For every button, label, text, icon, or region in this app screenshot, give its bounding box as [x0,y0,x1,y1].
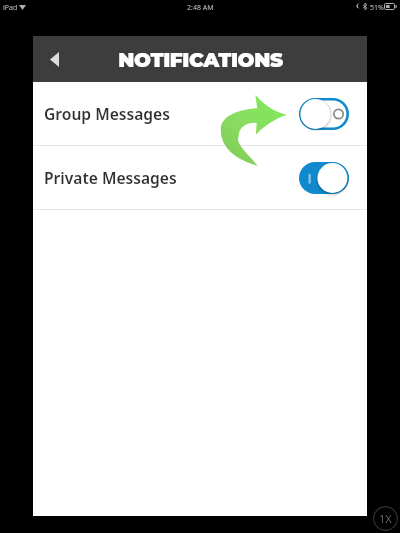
button[interactable]: Off [299,98,349,130]
staticText: 51% [370,3,384,13]
button[interactable]: On [299,162,349,194]
staticText: Group Messages [44,103,170,124]
button[interactable]: Group Messages [33,82,367,145]
button[interactable]: Private Messages [33,146,367,209]
staticText: 1X [379,511,392,526]
staticText: 2:48 AM [187,3,214,13]
button[interactable]: Back [35,40,73,78]
button[interactable]: 1X zoom [373,506,398,531]
staticText: iPad [3,3,18,13]
staticText: Private Messages [44,167,177,188]
staticText: NOTIFICATIONS [118,48,283,72]
